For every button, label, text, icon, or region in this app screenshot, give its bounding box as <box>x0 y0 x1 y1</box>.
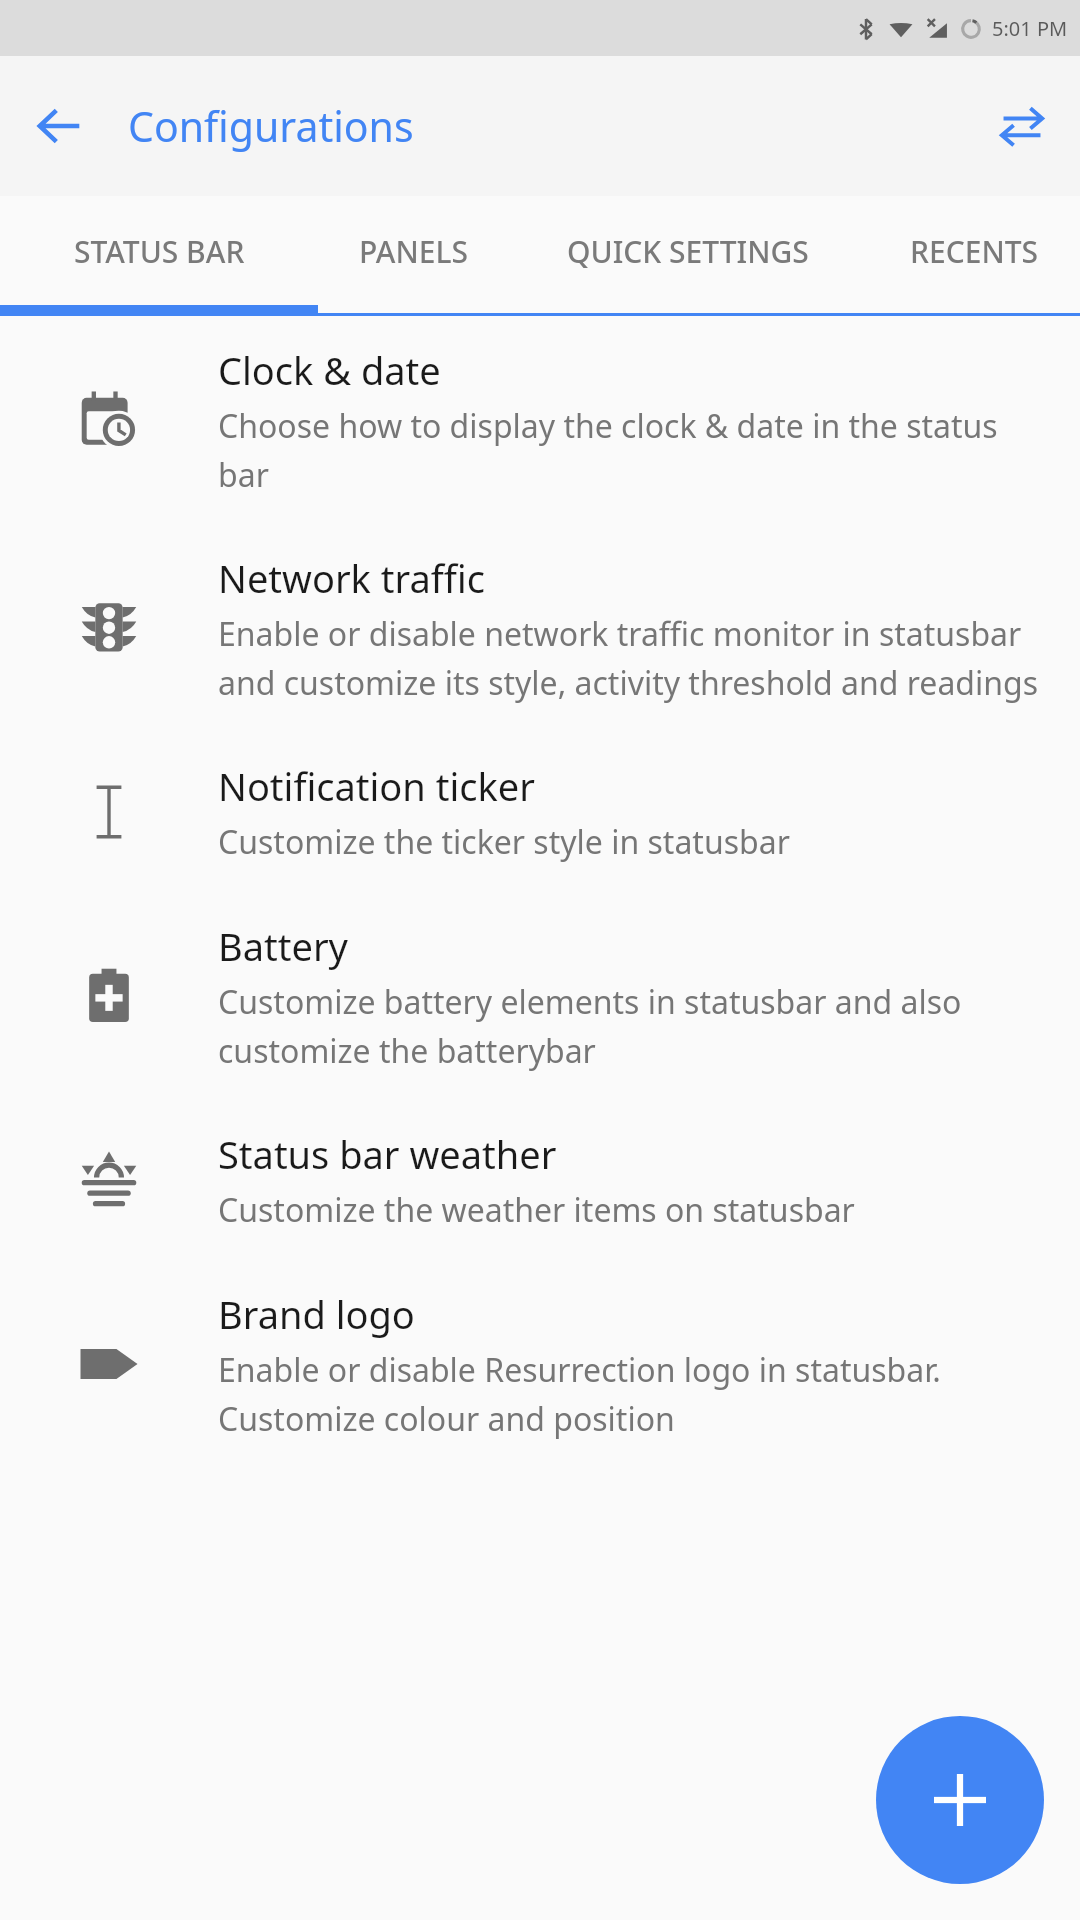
staticText: Battery <box>218 920 348 972</box>
button[interactable]: Swap <box>990 94 1054 158</box>
staticText: QUICK SETTINGS <box>567 231 809 272</box>
button[interactable]: Clock & date <box>0 316 1080 524</box>
staticText: RECENTS <box>910 231 1039 272</box>
button[interactable]: Network traffic <box>0 524 1080 732</box>
button[interactable]: STATUS BAR <box>0 196 318 306</box>
staticText: Clock & date <box>218 344 441 396</box>
staticText: Customize the weather items on statusbar <box>218 1188 855 1232</box>
staticText: Status bar weather <box>218 1128 557 1180</box>
button[interactable]: Battery <box>0 892 1080 1100</box>
staticText: Customize the ticker style in statusbar <box>218 820 790 864</box>
staticText: Enable or disable network traffic monito… <box>218 612 1040 704</box>
staticText: PANELS <box>359 231 468 272</box>
button[interactable]: Add <box>876 1716 1044 1884</box>
staticText: Notification ticker <box>218 760 535 812</box>
staticText: Brand logo <box>218 1288 415 1340</box>
staticText: Choose how to display the clock & date i… <box>218 404 1040 496</box>
staticText: 5:01 PM <box>992 15 1068 42</box>
staticText: STATUS BAR <box>74 231 245 272</box>
button[interactable]: QUICK SETTINGS <box>508 196 868 306</box>
staticText: Network traffic <box>218 552 485 604</box>
staticText: Enable or disable Resurrection logo in s… <box>218 1348 1040 1440</box>
staticText: Customize battery elements in statusbar … <box>218 980 1040 1072</box>
button[interactable]: Brand logo <box>0 1260 1080 1468</box>
button[interactable]: PANELS <box>318 196 508 306</box>
button[interactable]: RECENTS <box>868 196 1080 306</box>
button[interactable]: Back <box>26 92 94 160</box>
staticText: Configurations <box>128 98 414 154</box>
button[interactable]: Status bar weather <box>0 1100 1080 1260</box>
button[interactable]: Notification ticker <box>0 732 1080 892</box>
